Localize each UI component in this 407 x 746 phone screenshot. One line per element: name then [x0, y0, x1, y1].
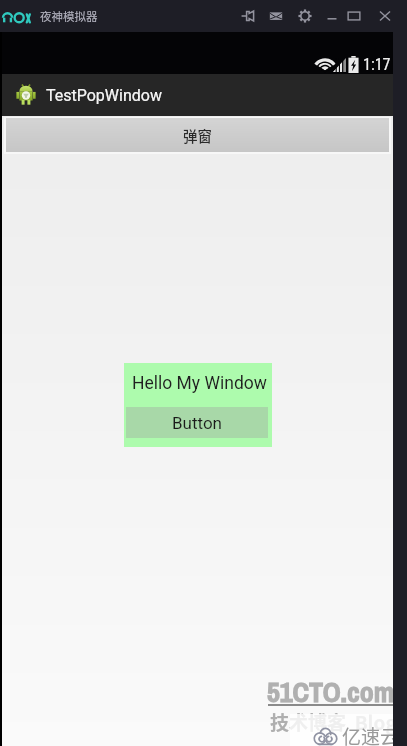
button[interactable]: Close [371, 0, 399, 32]
staticText: 亿速云 [342, 722, 393, 746]
button[interactable]: Minimize [318, 0, 346, 32]
staticText: 弹窗 [183, 125, 212, 146]
staticText: TestPopWindow [46, 86, 162, 105]
button[interactable]: Button [126, 407, 268, 438]
staticText: 技术博客 Blog [270, 708, 393, 736]
button[interactable]: Maximize [340, 0, 368, 32]
staticText: 1:17 [363, 55, 391, 74]
staticText: 夜神模拟器 [40, 8, 98, 25]
button[interactable]: 弹窗 [4, 117, 391, 154]
button[interactable]: Settings [291, 0, 319, 32]
staticText: 51CTO.com [267, 673, 393, 711]
button[interactable]: Pin window [234, 0, 262, 32]
staticText: Hello My Window [132, 373, 267, 394]
button[interactable]: Messages [262, 0, 290, 32]
staticText: Button [172, 413, 223, 433]
